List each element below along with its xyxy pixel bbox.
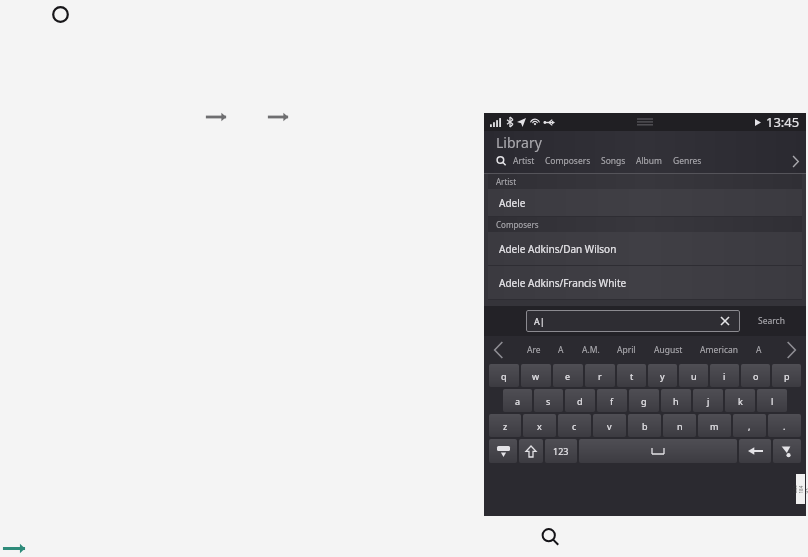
button[interactable]: April bbox=[614, 341, 639, 359]
staticText: u bbox=[691, 370, 697, 382]
button[interactable]: e bbox=[553, 364, 583, 387]
button[interactable]: Search bbox=[536, 523, 564, 551]
button[interactable]: r bbox=[585, 364, 615, 387]
staticText: A bbox=[756, 344, 762, 356]
staticText: a bbox=[515, 395, 521, 407]
staticText: b bbox=[642, 420, 648, 432]
button[interactable]: g bbox=[629, 389, 659, 412]
button[interactable]: 123 bbox=[545, 439, 577, 463]
button[interactable]: Clear bbox=[718, 314, 732, 328]
staticText: n bbox=[677, 420, 683, 432]
button[interactable]: Adele Adkins/Dan Wilson bbox=[488, 232, 802, 265]
staticText: Composers bbox=[496, 219, 539, 230]
button[interactable]: x bbox=[523, 414, 556, 437]
staticText: Genres bbox=[673, 155, 702, 167]
staticText: Library bbox=[496, 133, 542, 152]
staticText: z bbox=[503, 420, 508, 432]
button[interactable]: Songs bbox=[596, 153, 631, 169]
button[interactable]: Shift bbox=[519, 439, 543, 463]
staticText: k bbox=[738, 395, 743, 407]
staticText: American bbox=[700, 344, 738, 356]
button[interactable]: f bbox=[597, 389, 627, 412]
button[interactable]: Space bbox=[579, 439, 737, 463]
staticText: r bbox=[598, 370, 602, 382]
staticText: w bbox=[532, 370, 540, 382]
button[interactable]: Hide keyboard bbox=[489, 439, 517, 463]
staticText: Album bbox=[636, 155, 663, 167]
staticText: 123 bbox=[553, 445, 569, 457]
staticText: A bbox=[558, 344, 564, 356]
button[interactable]: . bbox=[768, 414, 801, 437]
button[interactable]: A bbox=[555, 341, 567, 359]
staticText: o bbox=[753, 370, 759, 382]
button[interactable]: Backspace bbox=[739, 439, 771, 463]
button[interactable]: A bbox=[753, 341, 765, 359]
button[interactable]: y bbox=[648, 364, 677, 387]
button[interactable]: a bbox=[503, 389, 532, 412]
staticText: y bbox=[660, 370, 665, 382]
button[interactable]: Adele bbox=[488, 189, 802, 216]
staticText: p bbox=[784, 370, 790, 382]
staticText: s bbox=[546, 395, 551, 407]
button[interactable]: h bbox=[661, 389, 691, 412]
button[interactable]: Search bbox=[494, 154, 508, 168]
button[interactable]: More tabs bbox=[788, 154, 802, 168]
button[interactable]: o bbox=[741, 364, 770, 387]
button[interactable]: v bbox=[593, 414, 626, 437]
button[interactable]: Artist bbox=[508, 153, 540, 169]
button[interactable]: m bbox=[698, 414, 731, 437]
staticText: v bbox=[607, 420, 612, 432]
staticText: Are bbox=[527, 344, 541, 356]
button[interactable]: d bbox=[565, 389, 595, 412]
button[interactable]: August bbox=[651, 341, 686, 359]
staticText: e bbox=[565, 370, 571, 382]
staticText: Adele Adkins/Francis White bbox=[499, 276, 627, 290]
button[interactable]: More suggestions bbox=[776, 336, 806, 363]
staticText: f bbox=[610, 395, 614, 407]
button[interactable]: Genres bbox=[668, 153, 707, 169]
button[interactable]: Artist bbox=[488, 174, 802, 189]
button[interactable]: i bbox=[710, 364, 739, 387]
button[interactable]: l bbox=[757, 389, 787, 412]
staticText: x bbox=[537, 420, 542, 432]
staticText: d bbox=[577, 395, 583, 407]
button[interactable]: Step marker bbox=[48, 2, 72, 26]
button[interactable]: z bbox=[489, 414, 521, 437]
button[interactable]: Handwriting input bbox=[773, 439, 801, 463]
button[interactable]: Search bbox=[740, 306, 802, 336]
button[interactable]: s bbox=[534, 389, 563, 412]
staticText: m bbox=[710, 420, 719, 432]
staticText: . bbox=[783, 420, 786, 432]
staticText: August bbox=[654, 344, 683, 356]
button[interactable]: c bbox=[558, 414, 591, 437]
button[interactable]: A.M. bbox=[579, 341, 603, 359]
button[interactable]: Composers bbox=[540, 153, 596, 169]
staticText: j bbox=[707, 395, 710, 407]
button[interactable]: p bbox=[772, 364, 801, 387]
staticText: l bbox=[771, 395, 774, 407]
button[interactable]: j bbox=[693, 389, 723, 412]
button[interactable]: t bbox=[617, 364, 646, 387]
button[interactable]: Composers bbox=[488, 217, 802, 232]
staticText: t bbox=[630, 370, 634, 382]
button[interactable]: A| bbox=[526, 310, 740, 332]
staticText: Adele Adkins/Dan Wilson bbox=[499, 242, 617, 256]
button[interactable]: n bbox=[663, 414, 696, 437]
button[interactable]: Previous suggestions bbox=[484, 336, 512, 363]
button[interactable]: w bbox=[521, 364, 551, 387]
button[interactable]: , bbox=[733, 414, 766, 437]
button[interactable]: b bbox=[628, 414, 661, 437]
staticText: q bbox=[501, 370, 507, 382]
button[interactable]: u bbox=[679, 364, 708, 387]
staticText: Adele bbox=[499, 196, 526, 210]
button[interactable]: Album bbox=[631, 153, 668, 169]
button[interactable]: q bbox=[489, 364, 519, 387]
staticText: , bbox=[748, 420, 751, 432]
button[interactable]: Are bbox=[524, 341, 544, 359]
staticText: 13:45 bbox=[766, 113, 800, 131]
button[interactable]: American bbox=[697, 341, 741, 359]
button[interactable]: Adele Adkins/Francis White bbox=[488, 266, 802, 299]
button[interactable]: k bbox=[725, 389, 755, 412]
staticText: Artist bbox=[513, 155, 535, 167]
staticText: Artist bbox=[496, 176, 517, 187]
